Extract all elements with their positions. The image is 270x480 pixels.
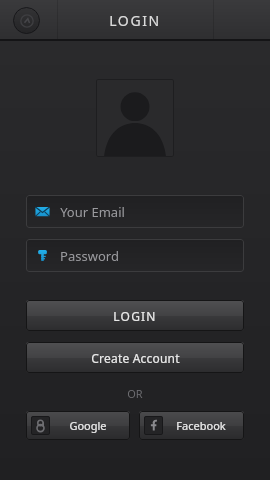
button[interactable]: LOGIN — [26, 300, 244, 331]
button[interactable]: Facebook — [139, 411, 244, 440]
staticText: Password — [60, 247, 119, 265]
button[interactable]: Back — [13, 7, 40, 34]
button[interactable]: Your Email — [26, 195, 244, 228]
button[interactable]: Create Account — [26, 342, 244, 373]
staticText: OR — [127, 386, 143, 401]
button[interactable]: Password — [26, 239, 244, 272]
button[interactable]: Google — [26, 411, 130, 440]
staticText: Create Account — [91, 350, 180, 366]
staticText: LOGIN — [109, 11, 161, 30]
staticText: Facebook — [176, 418, 226, 433]
staticText: LOGIN — [113, 308, 157, 324]
button[interactable]: Profile photo — [96, 79, 174, 157]
staticText: Google — [69, 418, 107, 433]
staticText: Your Email — [60, 203, 125, 221]
